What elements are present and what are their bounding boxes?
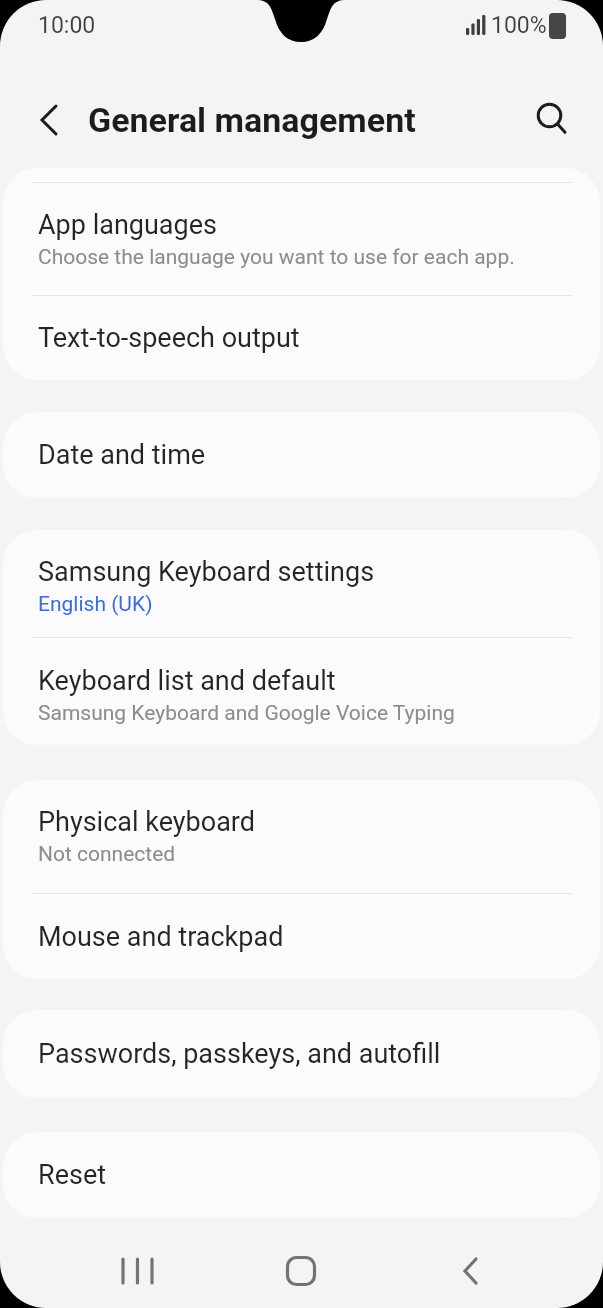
button[interactable]: Samsung Keyboard settings xyxy=(3,530,600,637)
staticText: Choose the language you want to use for … xyxy=(38,245,515,270)
staticText: Reset xyxy=(38,1159,107,1191)
button[interactable] xyxy=(420,1241,521,1301)
button[interactable] xyxy=(30,100,70,140)
staticText: General management xyxy=(88,100,416,140)
staticText: Samsung Keyboard settings xyxy=(38,556,375,588)
staticText: Passwords, passkeys, and autofill xyxy=(38,1038,441,1070)
button[interactable]: Keyboard list and default xyxy=(3,638,600,745)
button[interactable] xyxy=(530,98,574,142)
button[interactable] xyxy=(87,1241,188,1301)
button[interactable]: Passwords, passkeys, and autofill xyxy=(3,1010,600,1098)
staticText: Samsung Keyboard and Google Voice Typing xyxy=(38,701,455,726)
button[interactable]: Physical keyboard xyxy=(3,780,600,893)
button[interactable] xyxy=(250,1241,352,1301)
staticText: Date and time xyxy=(38,439,206,471)
staticText: Mouse and trackpad xyxy=(38,921,284,953)
button[interactable]: Mouse and trackpad xyxy=(3,894,600,979)
button[interactable]: Reset xyxy=(3,1132,600,1218)
staticText: Not connected xyxy=(38,842,176,867)
staticText: 100% xyxy=(491,12,547,39)
staticText: Text-to-speech output xyxy=(38,322,300,354)
staticText: Keyboard list and default xyxy=(38,665,336,697)
button[interactable]: Date and time xyxy=(3,412,600,498)
staticText: 10:00 xyxy=(38,12,96,39)
staticText: Physical keyboard xyxy=(38,806,255,838)
staticText: App languages xyxy=(38,209,217,241)
button[interactable]: Text-to-speech output xyxy=(3,296,600,380)
button[interactable]: App languages xyxy=(3,183,600,295)
staticText: English (UK) xyxy=(38,592,153,617)
